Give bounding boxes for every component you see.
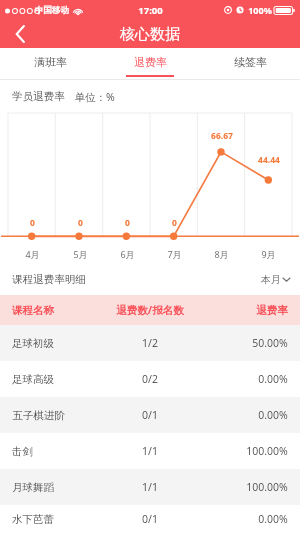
staticText: 100.00% [246, 480, 288, 494]
staticText: 0.00% [258, 512, 288, 526]
staticText: 50.00% [252, 336, 288, 350]
staticText: 0.00% [258, 408, 288, 422]
staticText: 0 [172, 217, 177, 229]
staticText: 66.67 [211, 130, 233, 142]
staticText: 5月 [73, 248, 88, 260]
staticText: 续签率 [234, 55, 267, 69]
staticText: 五子棋进阶 [12, 409, 65, 422]
staticText: 1/1 [142, 444, 158, 458]
staticText: 100% [248, 4, 272, 16]
staticText: 0 [30, 217, 35, 229]
staticText: 100.00% [246, 444, 288, 458]
staticText: 单位：% [74, 90, 115, 104]
staticText: 0.00% [258, 372, 288, 386]
staticText: 足球高级 [12, 373, 54, 386]
staticText: 17:00 [138, 4, 163, 17]
staticText: 足球初级 [12, 337, 54, 350]
button[interactable]: Back [0, 20, 40, 48]
staticText: 课程名称 [12, 304, 54, 317]
button[interactable]: 击剑 [0, 433, 300, 469]
staticText: 月球舞蹈 [12, 481, 54, 494]
staticText: 核心数据 [120, 25, 180, 44]
button[interactable]: 足球初级 [0, 325, 300, 361]
button[interactable]: 满班率 [0, 48, 100, 80]
staticText: 44.44 [258, 154, 280, 166]
staticText: 击剑 [12, 445, 33, 458]
staticText: 4月 [25, 248, 40, 260]
staticText: 中国移动 [35, 5, 69, 16]
staticText: 学员退费率 [12, 90, 65, 103]
staticText: 0/1 [142, 408, 158, 422]
staticText: 0/2 [142, 372, 158, 386]
button[interactable]: 本月 [261, 273, 290, 286]
staticText: 退费数/报名数 [116, 303, 184, 317]
staticText: 退费率 [256, 304, 288, 317]
button[interactable]: 五子棋进阶 [0, 397, 300, 433]
staticText: 0/1 [142, 512, 158, 526]
staticText: 满班率 [34, 55, 67, 69]
staticText: 9月 [261, 248, 276, 260]
staticText: 退费率 [134, 55, 167, 69]
staticText: 1/1 [142, 480, 158, 494]
staticText: 6月 [120, 248, 135, 260]
staticText: 课程退费率明细 [12, 273, 86, 286]
staticText: 0 [78, 217, 83, 229]
button[interactable]: 月球舞蹈 [0, 469, 300, 505]
staticText: 8月 [214, 248, 229, 260]
button[interactable]: 水下芭蕾 [0, 505, 300, 533]
button[interactable]: 足球高级 [0, 361, 300, 397]
button[interactable]: 退费率 [100, 48, 200, 80]
button[interactable]: 续签率 [200, 48, 300, 80]
staticText: 本月 [261, 273, 281, 286]
staticText: 1/2 [142, 336, 158, 350]
staticText: 0 [125, 217, 130, 229]
staticText: 7月 [167, 248, 182, 260]
staticText: 水下芭蕾 [12, 513, 54, 526]
